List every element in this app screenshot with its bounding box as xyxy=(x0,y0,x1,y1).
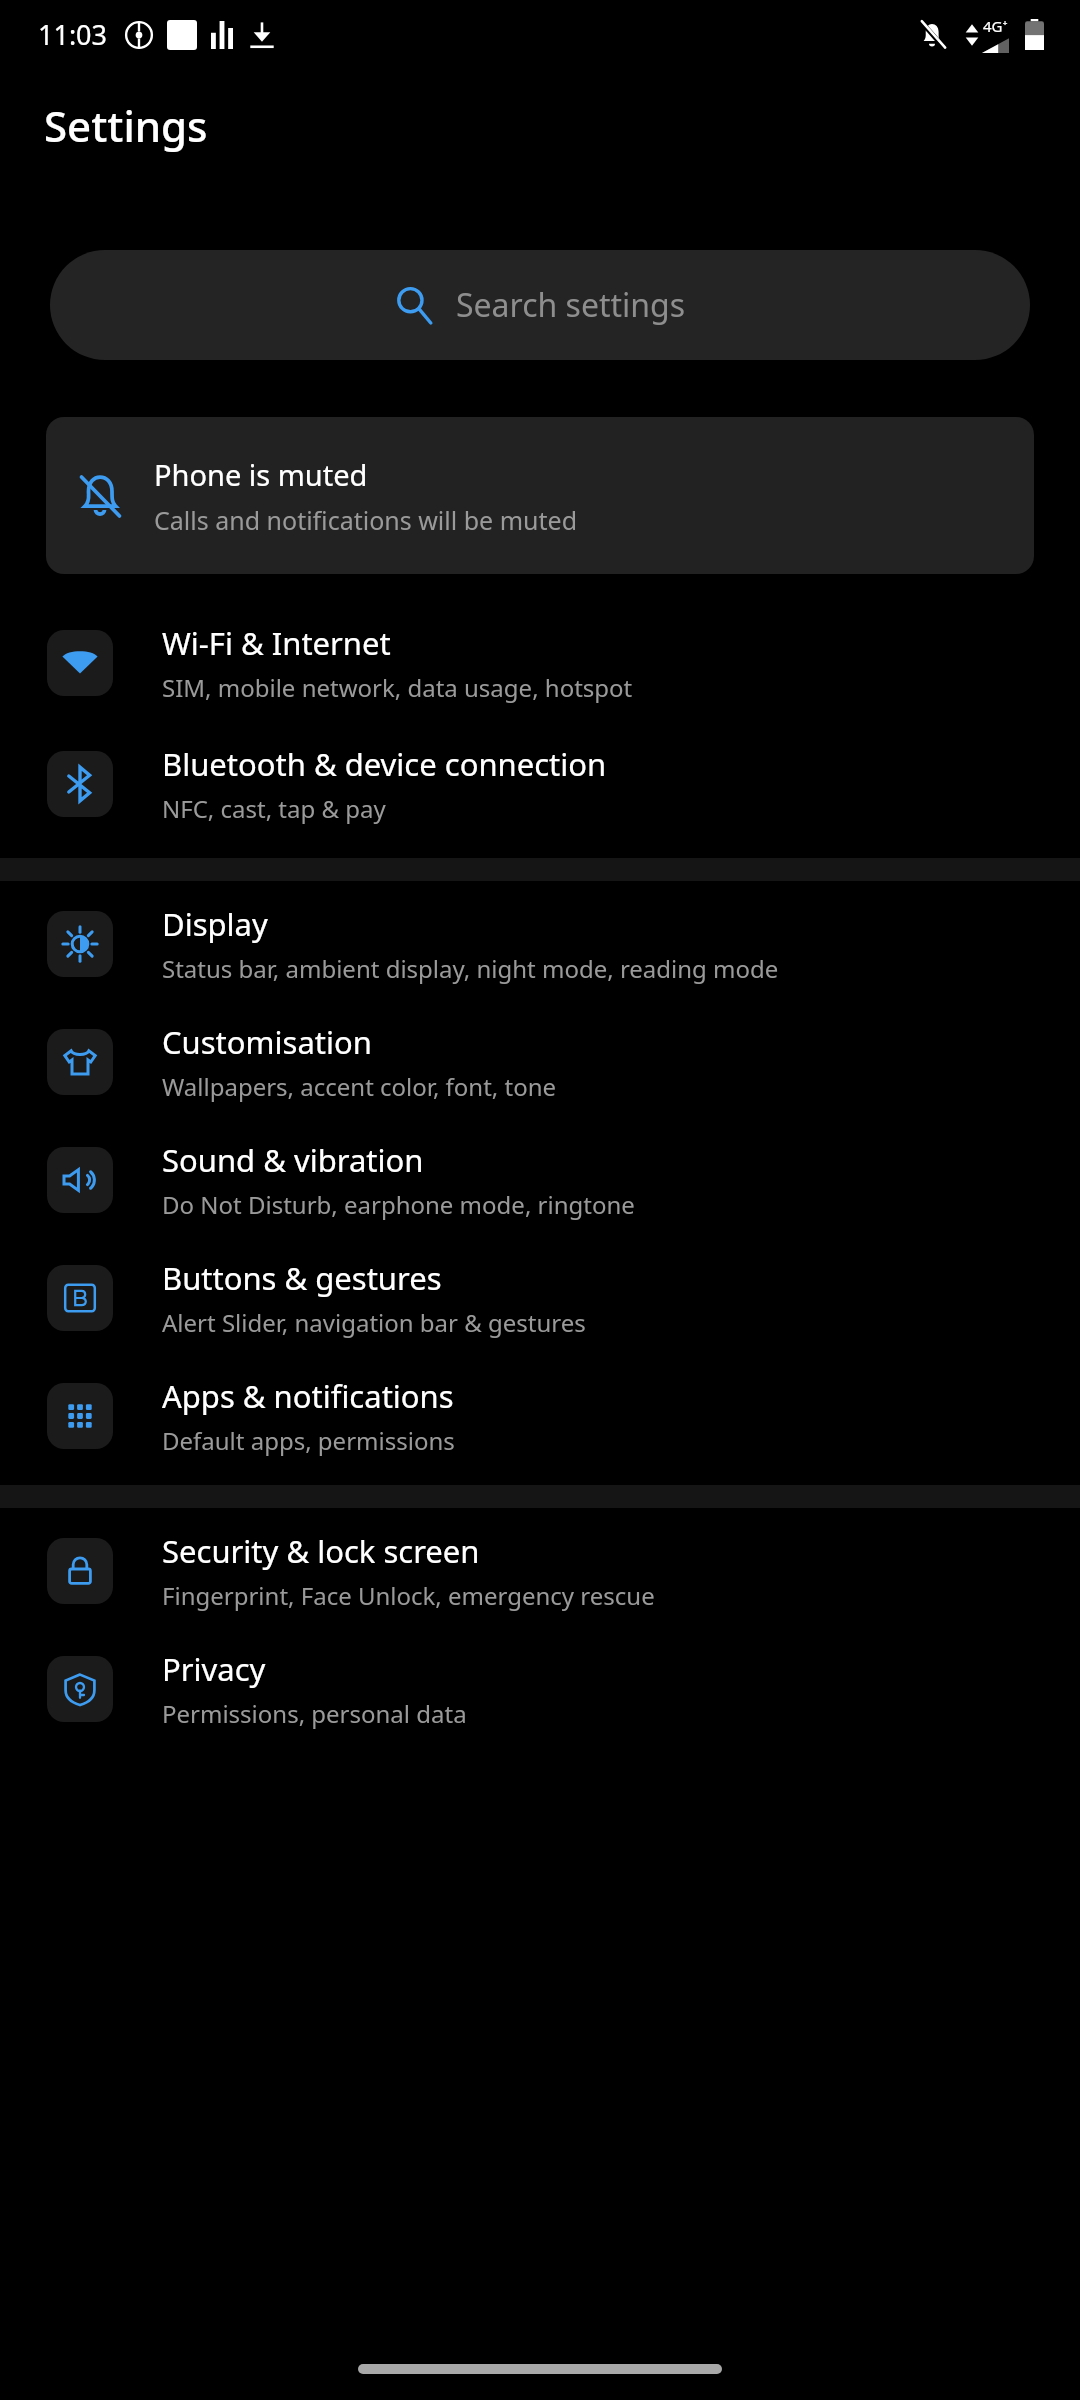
staticText: Do Not Disturb, earphone mode, ringtone xyxy=(162,1188,635,1221)
button[interactable]: Search settings xyxy=(50,250,1030,360)
staticText: Permissions, personal data xyxy=(162,1697,467,1730)
staticText: NFC, cast, tap & pay xyxy=(162,792,386,825)
staticText: Privacy xyxy=(162,1648,266,1690)
button[interactable]: Customisation xyxy=(0,1003,1080,1121)
button[interactable]: Bluetooth & device connection xyxy=(0,723,1080,844)
staticText: Default apps, permissions xyxy=(162,1424,455,1457)
staticText: Settings xyxy=(44,97,208,154)
staticText: Fingerprint, Face Unlock, emergency resc… xyxy=(162,1579,655,1612)
staticText: 4G⁺ xyxy=(983,16,1008,36)
staticText: Security & lock screen xyxy=(162,1530,480,1572)
button[interactable]: Sound & vibration xyxy=(0,1121,1080,1239)
button[interactable]: Buttons & gestures xyxy=(0,1239,1080,1357)
staticText: Customisation xyxy=(162,1021,372,1063)
staticText: Phone is muted xyxy=(154,455,368,494)
staticText: Buttons & gestures xyxy=(162,1257,442,1299)
staticText: Status bar, ambient display, night mode,… xyxy=(162,952,779,985)
staticText: Calls and notifications will be muted xyxy=(154,503,578,537)
staticText: Bluetooth & device connection xyxy=(162,743,607,785)
staticText: Wallpapers, accent color, font, tone xyxy=(162,1070,557,1103)
button[interactable]: Security & lock screen xyxy=(0,1512,1080,1630)
staticText: Sound & vibration xyxy=(162,1139,424,1181)
staticText: SIM, mobile network, data usage, hotspot xyxy=(162,671,633,704)
button[interactable]: Wi-Fi & Internet xyxy=(0,602,1080,723)
staticText: Apps & notifications xyxy=(162,1375,454,1417)
staticText: Search settings xyxy=(456,283,686,327)
staticText: Wi-Fi & Internet xyxy=(162,622,391,664)
button[interactable]: Phone is muted xyxy=(46,417,1034,574)
staticText: Alert Slider, navigation bar & gestures xyxy=(162,1306,586,1339)
button[interactable]: Privacy xyxy=(0,1630,1080,1748)
staticText: Display xyxy=(162,903,268,945)
button[interactable]: Apps & notifications xyxy=(0,1357,1080,1475)
staticText: 11:03 xyxy=(38,16,108,53)
button[interactable]: Display xyxy=(0,885,1080,1003)
